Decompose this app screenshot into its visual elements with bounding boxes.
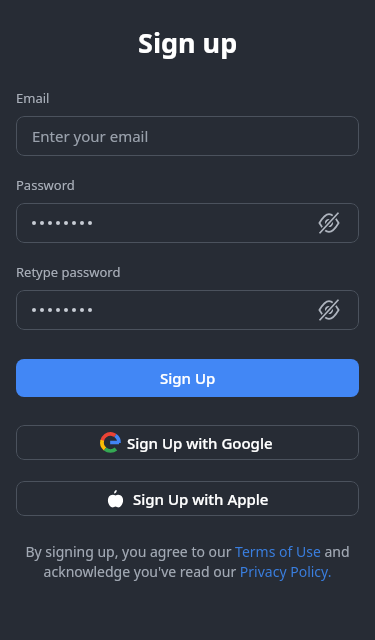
- staticText: Sign up: [138, 24, 238, 61]
- button[interactable]: Sign Up with Google: [16, 425, 359, 460]
- staticText: Sign Up with Google: [127, 433, 273, 453]
- staticText: Password: [16, 176, 75, 194]
- staticText: Enter your email: [32, 126, 149, 146]
- staticText: Sign Up: [160, 368, 216, 388]
- staticText: Sign Up with Apple: [133, 489, 269, 509]
- button[interactable]: Show password: [16, 203, 359, 243]
- button[interactable]: Show retyped password: [16, 290, 359, 330]
- button[interactable]: Show password: [315, 209, 343, 237]
- button[interactable]: Enter your email: [16, 116, 359, 156]
- button[interactable]: Show retyped password: [315, 296, 343, 324]
- button[interactable]: Sign Up: [16, 359, 359, 397]
- staticText: Retype password: [16, 263, 121, 281]
- button[interactable]: Sign Up with Apple: [16, 481, 359, 516]
- staticText: Email: [16, 89, 50, 107]
- button[interactable]: By signing up, you agree to our Terms of…: [16, 542, 359, 582]
- staticText: By signing up, you agree to our Terms of…: [20, 542, 355, 582]
